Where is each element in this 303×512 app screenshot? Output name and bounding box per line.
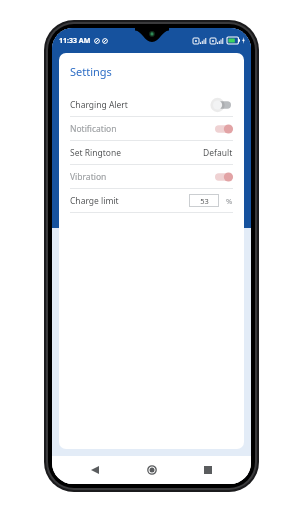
- staticText: 53: [200, 196, 209, 206]
- staticText: Charge limit: [70, 195, 119, 207]
- staticText: Set Ringtone: [70, 147, 121, 159]
- button[interactable]: Recent apps: [197, 459, 219, 481]
- button[interactable]: Toggle off: [213, 98, 233, 112]
- staticText: Vibration: [70, 171, 107, 183]
- button[interactable]: Home: [141, 459, 163, 481]
- staticText: 11:33 AM: [59, 36, 91, 46]
- button[interactable]: Back: [84, 459, 106, 481]
- staticText: Notification: [70, 123, 117, 135]
- button[interactable]: Vibration: [59, 165, 244, 188]
- staticText: Default: [203, 147, 233, 159]
- button[interactable]: Toggle on: [213, 122, 233, 136]
- button[interactable]: Charging Alert: [59, 93, 244, 116]
- staticText: %: [226, 196, 233, 206]
- staticText: Charging Alert: [70, 99, 128, 111]
- button[interactable]: Set Ringtone: [59, 141, 244, 164]
- staticText: Settings: [70, 64, 112, 79]
- button[interactable]: 53: [189, 194, 219, 207]
- button[interactable]: Toggle on: [213, 170, 233, 184]
- button[interactable]: Notification: [59, 117, 244, 140]
- button[interactable]: Charge limit: [59, 189, 244, 212]
